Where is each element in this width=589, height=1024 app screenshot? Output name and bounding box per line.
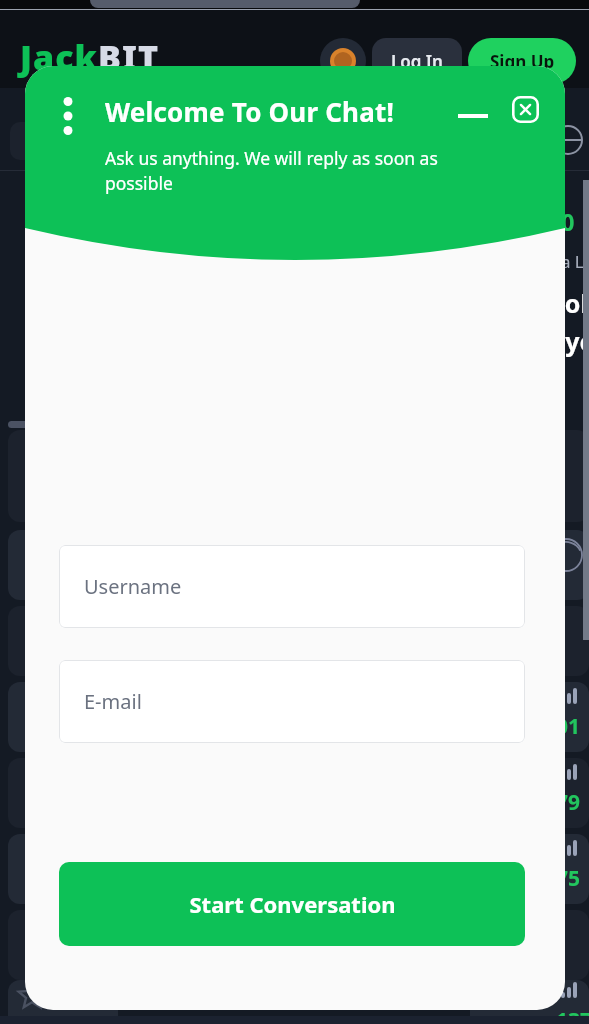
button[interactable]: Sign Up [468,38,576,84]
staticText: Ask us anything. We will reply as soon a… [105,146,505,196]
button[interactable]: Jack [20,34,159,80]
button[interactable]: Menu [10,122,56,160]
staticText: Jack [20,34,98,80]
staticText: 1374 [556,1006,589,1024]
button[interactable] [8,758,118,828]
staticText: 75 [556,864,581,893]
button[interactable] [8,430,118,522]
button[interactable]: Language [548,120,588,160]
button[interactable] [470,430,589,522]
button[interactable] [8,682,118,752]
staticText: Welcome To Our Chat! [105,94,395,129]
button[interactable]: Start Conversation [59,862,525,946]
button[interactable]: Username [59,545,525,628]
staticText: 79 [556,788,581,817]
button[interactable] [470,606,589,676]
button[interactable]: E-mail [59,660,525,743]
button[interactable]: More options [51,88,85,144]
button[interactable] [8,530,118,600]
button[interactable] [470,530,589,600]
button[interactable]: Balance [320,38,366,84]
button[interactable] [8,606,118,676]
staticText: 00 [548,206,575,237]
staticText: La L [552,250,584,273]
button[interactable]: Log In [372,38,462,84]
button[interactable] [470,758,589,828]
button[interactable]: Close [504,88,546,130]
staticText: Sign Up [490,50,555,73]
staticText: Log In [391,50,443,73]
button[interactable]: Minimize [449,90,497,134]
button[interactable] [8,910,118,980]
staticText: BIT [98,34,159,80]
staticText: dol [549,286,588,320]
button[interactable] [8,834,118,904]
staticText: 01 [556,712,581,741]
staticText: Username [84,573,182,600]
staticText: nyc [549,324,589,358]
button[interactable]: Favorites [14,978,50,1014]
button[interactable] [470,910,589,980]
button[interactable] [470,834,589,904]
button[interactable] [470,682,589,752]
staticText: E-mail [84,688,142,715]
staticText: Start Conversation [189,889,396,919]
button[interactable] [470,980,589,1024]
button[interactable] [8,980,118,1024]
